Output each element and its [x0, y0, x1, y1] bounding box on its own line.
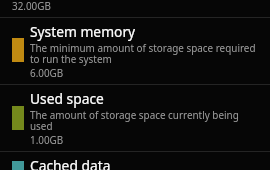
button[interactable]: Used space	[0, 84, 270, 151]
staticText: 32.00GB	[12, 0, 51, 12]
staticText: 6.00GB	[30, 66, 64, 79]
staticText: Used space	[30, 89, 104, 108]
button[interactable]: 32.00GB	[0, 0, 270, 17]
staticText: The amount of storage space currently be…	[30, 108, 259, 133]
staticText: The minimum amount of storage space requ…	[30, 41, 259, 66]
button[interactable]: System memory	[0, 17, 270, 84]
staticText: 1.00GB	[30, 133, 64, 146]
staticText: System memory	[30, 22, 136, 41]
button[interactable]: Cached data	[0, 152, 270, 170]
staticText: Cached data	[30, 156, 111, 170]
